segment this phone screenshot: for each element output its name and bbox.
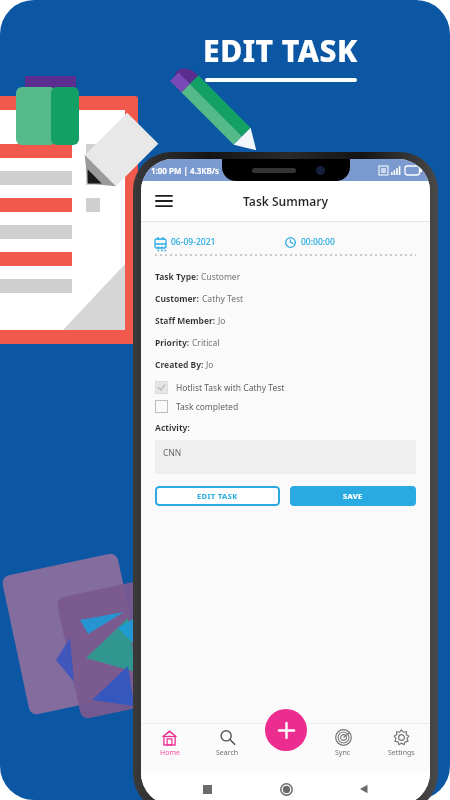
staticText: CNN [163, 447, 182, 459]
staticText: Priority: [155, 337, 192, 349]
button[interactable]: Sync [314, 729, 372, 773]
button[interactable]: Back [352, 777, 376, 800]
staticText: Activity: [155, 422, 190, 434]
staticText: SAVE [343, 491, 363, 501]
staticText: Hotlist Task with Cathy Test [176, 382, 285, 394]
button[interactable]: Add task [265, 709, 307, 751]
staticText: 06-09-2021 [171, 236, 216, 248]
button[interactable]: Hotlist Task with Cathy Test [155, 381, 416, 394]
staticText: Customer [201, 271, 241, 283]
staticText: EDIT TASK [197, 491, 238, 501]
button[interactable]: Home [274, 777, 298, 800]
button[interactable]: SAVE [290, 486, 416, 506]
button[interactable]: Recents [195, 777, 219, 800]
staticText: Task completed [176, 401, 239, 413]
staticText: Critical [192, 337, 220, 349]
staticText: Customer: [155, 293, 202, 305]
staticText: Search [216, 748, 239, 758]
staticText: Home [160, 748, 180, 758]
staticText: Staff Member: [155, 315, 218, 327]
staticText: Jo [206, 359, 214, 371]
button[interactable]: Settings [372, 729, 430, 773]
staticText: Sync [335, 748, 351, 758]
staticText: Cathy Test [202, 293, 244, 305]
button[interactable]: EDIT TASK [155, 486, 280, 506]
button[interactable]: Menu [149, 186, 179, 216]
button[interactable]: Search [198, 729, 256, 773]
button[interactable]: Task completed [155, 400, 416, 413]
staticText: Task Summary [243, 193, 329, 209]
staticText: Settings [388, 748, 415, 758]
staticText: 00:00:00 [301, 236, 335, 248]
button[interactable]: Home [141, 729, 198, 773]
staticText: 1:00 PM | 4.3KB/s [151, 165, 219, 176]
staticText: Created By: [155, 359, 206, 371]
staticText: Jo [218, 315, 226, 327]
staticText: EDIT TASK [203, 30, 358, 71]
staticText: Task Type: [155, 271, 201, 283]
